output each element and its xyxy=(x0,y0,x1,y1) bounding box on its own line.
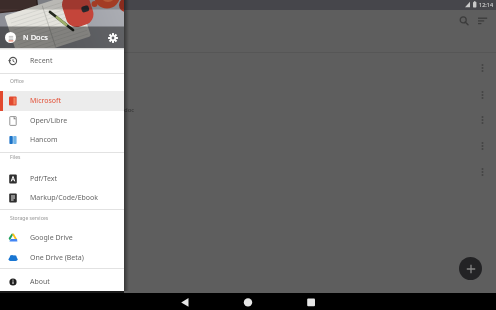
staticText: Microsoft xyxy=(30,96,62,106)
staticText: Open/Libre xyxy=(30,116,68,126)
button[interactable]: Recent xyxy=(0,49,124,73)
button[interactable] xyxy=(240,294,256,310)
staticText: Recent xyxy=(30,56,53,66)
button[interactable]: Open/Libre xyxy=(0,111,124,131)
button[interactable]: About xyxy=(0,272,124,292)
button[interactable] xyxy=(107,32,119,44)
staticText: Markup/Code/Ebook xyxy=(30,193,99,203)
button[interactable]: Hancom xyxy=(0,130,124,150)
staticText: Hancom xyxy=(30,135,58,145)
staticText: 12:14 xyxy=(479,1,494,8)
staticText: Office xyxy=(10,78,24,85)
staticText: About xyxy=(30,277,50,287)
button[interactable] xyxy=(475,13,491,29)
button[interactable]: Microsoft xyxy=(0,91,124,111)
staticText: doc xyxy=(124,106,135,114)
staticText: Google Drive xyxy=(30,233,73,243)
staticText: One Drive (Beta) xyxy=(30,253,84,263)
staticText: N Docs xyxy=(23,32,48,42)
button[interactable] xyxy=(303,294,319,310)
staticText: Pdf/Text xyxy=(30,174,57,184)
button[interactable]: Markup/Code/Ebook xyxy=(0,188,124,207)
button[interactable] xyxy=(5,32,16,43)
button[interactable]: One Drive (Beta) xyxy=(0,248,124,267)
button[interactable] xyxy=(459,257,482,280)
button[interactable] xyxy=(456,13,472,29)
button[interactable]: Pdf/Text xyxy=(0,169,124,189)
button[interactable] xyxy=(177,294,193,310)
button[interactable]: Google Drive xyxy=(0,228,124,248)
staticText: Storage services xyxy=(10,215,49,222)
staticText: Files xyxy=(10,154,21,161)
